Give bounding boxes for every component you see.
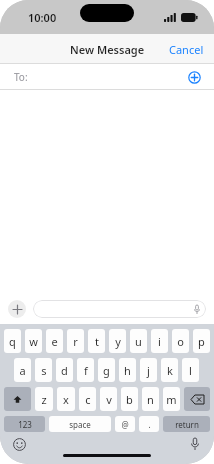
staticText: p [198,334,205,349]
staticText: . [148,419,151,430]
staticText: d [61,363,68,378]
staticText: a [19,363,26,378]
staticText: l [189,363,192,378]
button[interactable]: e [46,329,63,353]
button[interactable]: n [142,387,159,411]
staticText: j [147,363,150,378]
other: Dictate [194,305,200,314]
staticText: return [175,419,199,430]
button[interactable]: Dictation [186,435,204,453]
staticText: b [126,392,133,407]
staticText: v [106,392,112,407]
staticText: i [158,334,161,349]
button[interactable]: m [163,387,180,411]
button[interactable]: l [182,358,199,382]
staticText: New Message [70,42,145,57]
staticText: x [63,392,69,407]
button[interactable]: Delete [184,387,210,411]
button[interactable]: Add attachment [8,300,26,318]
button[interactable]: 123 [4,416,45,432]
button[interactable]: f [77,358,94,382]
staticText: y [115,334,121,349]
staticText: To: [14,70,28,84]
staticText: s [41,363,47,378]
button[interactable]: space [49,416,111,432]
staticText: w [29,334,38,349]
staticText: q [9,334,16,349]
button[interactable]: c [79,387,96,411]
staticText: u [135,334,142,349]
staticText: 10:00 [28,10,57,25]
staticText: o [177,334,184,349]
staticText: space [69,419,91,430]
staticText: @ [121,419,129,430]
button[interactable]: r [67,329,84,353]
button[interactable]: Emoji [10,435,28,453]
button[interactable]: Cancel [159,36,214,63]
button[interactable]: w [25,329,42,353]
button[interactable]: u [130,329,147,353]
button[interactable]: x [57,387,75,411]
button[interactable]: v [100,387,117,411]
button[interactable]: Dictate [33,300,206,318]
button[interactable]: . [139,416,159,432]
button[interactable]: g [98,358,115,382]
button[interactable]: y [109,329,126,353]
button[interactable]: p [193,329,210,353]
button[interactable]: b [121,387,138,411]
button[interactable]: @ [115,416,135,432]
button[interactable]: h [119,358,136,382]
button[interactable]: return [163,416,210,432]
button[interactable]: o [172,329,189,353]
staticText: c [85,392,91,407]
button[interactable]: j [140,358,157,382]
button[interactable]: Shift [4,387,31,411]
staticText: t [95,334,99,349]
staticText: g [103,363,110,378]
button[interactable]: s [35,358,52,382]
button[interactable]: To: [0,64,214,90]
staticText: r [73,334,78,349]
staticText: h [124,363,131,378]
staticText: n [147,392,154,407]
button[interactable]: i [151,329,168,353]
button[interactable]: q [4,329,21,353]
button[interactable]: a [14,358,31,382]
staticText: Cancel [169,42,204,57]
button[interactable]: k [161,358,178,382]
staticText: z [41,392,47,407]
staticText: f [84,363,88,378]
staticText: m [166,392,177,407]
staticText: k [167,363,173,378]
staticText: 123 [18,419,32,430]
staticText: e [51,334,58,349]
button[interactable]: t [88,329,105,353]
button[interactable]: Add contact [184,67,204,87]
button[interactable]: z [35,387,53,411]
button[interactable]: d [56,358,73,382]
